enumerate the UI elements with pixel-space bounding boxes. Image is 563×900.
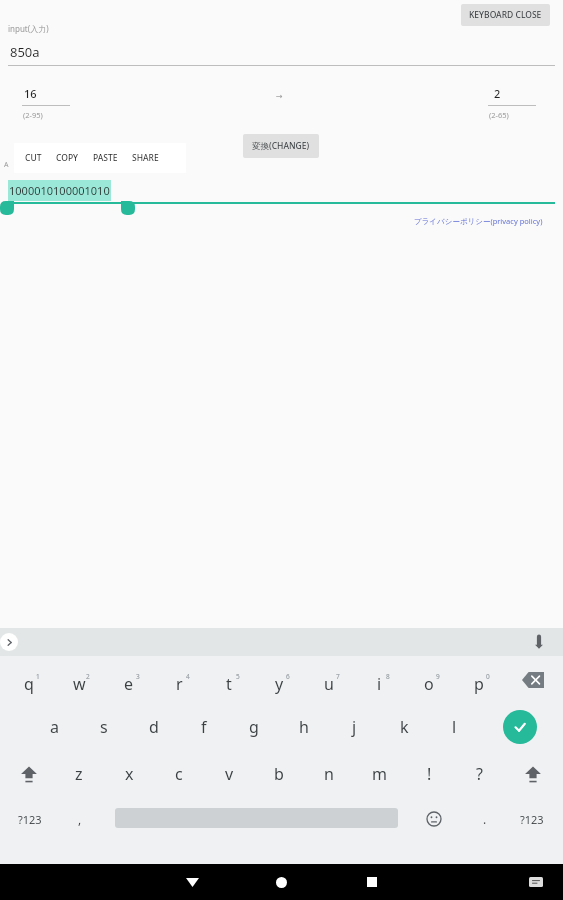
staticText: w <box>73 673 86 695</box>
button[interactable]: w <box>54 656 104 703</box>
button[interactable]: a <box>29 703 79 750</box>
staticText: 8 <box>386 672 390 681</box>
button[interactable]: ?123 <box>506 797 558 841</box>
staticText: A <box>4 160 9 170</box>
staticText: , <box>78 811 82 827</box>
staticText: CUT <box>25 152 42 164</box>
staticText: ? <box>476 763 483 785</box>
button[interactable]: ! <box>404 750 454 797</box>
staticText: q <box>24 673 34 695</box>
staticText: 1 <box>36 672 40 681</box>
staticText: b <box>274 763 284 785</box>
button[interactable]: u <box>304 656 354 703</box>
button[interactable]: f <box>179 703 229 750</box>
button[interactable]: o <box>404 656 454 703</box>
staticText: (2-95) <box>23 110 43 120</box>
staticText: PASTE <box>93 152 118 164</box>
button[interactable]: c <box>154 750 204 797</box>
button[interactable]: n <box>304 750 354 797</box>
staticText: ?123 <box>520 812 544 827</box>
button[interactable]: j <box>329 703 379 750</box>
button[interactable]: g <box>229 703 279 750</box>
button[interactable]: ? <box>454 750 504 797</box>
staticText: o <box>424 673 434 695</box>
button[interactable]: t <box>204 656 254 703</box>
staticText: 2 <box>86 672 90 681</box>
button[interactable]: Shift <box>508 750 558 797</box>
button[interactable]: d <box>129 703 179 750</box>
button[interactable]: Emoji <box>412 797 456 841</box>
button[interactable]: e <box>104 656 154 703</box>
staticText: r <box>176 673 183 695</box>
staticText: KEYBOARD CLOSE <box>469 9 542 21</box>
staticText: k <box>400 716 409 738</box>
button[interactable]: . <box>463 797 507 841</box>
button[interactable]: h <box>279 703 329 750</box>
button[interactable]: Backspace <box>508 656 558 703</box>
staticText: 7 <box>336 672 340 681</box>
staticText: 9 <box>436 672 440 681</box>
button[interactable]: p <box>454 656 504 703</box>
staticText: . <box>483 811 487 827</box>
staticText: COPY <box>56 152 79 164</box>
button[interactable]: x <box>104 750 154 797</box>
button[interactable]: q <box>4 656 54 703</box>
staticText: t <box>226 673 232 695</box>
staticText: input(入力) <box>8 23 49 34</box>
button[interactable]: Enter <box>495 703 545 750</box>
staticText: f <box>201 716 207 738</box>
button[interactable]: Change keyboard <box>523 869 549 895</box>
staticText: d <box>149 716 159 738</box>
staticText: l <box>452 716 457 738</box>
button[interactable]: Recent apps <box>352 864 392 900</box>
button[interactable]: r <box>154 656 204 703</box>
button[interactable]: ?123 <box>4 797 56 841</box>
button[interactable]: Back <box>172 864 212 900</box>
staticText: 850a <box>10 43 40 61</box>
staticText: 4 <box>186 672 190 681</box>
button[interactable]: m <box>354 750 404 797</box>
button[interactable]: 変換(CHANGE) <box>243 134 319 158</box>
button[interactable]: SHARE <box>125 146 166 170</box>
button[interactable]: , <box>58 797 102 841</box>
button[interactable]: Expand toolbar <box>0 633 18 651</box>
staticText: m <box>372 763 387 785</box>
staticText: プライバシーポリシー(privacy policy) <box>414 216 543 226</box>
button[interactable]: Voice input <box>529 632 549 652</box>
button[interactable]: s <box>79 703 129 750</box>
staticText: u <box>324 673 334 695</box>
staticText: z <box>75 763 83 785</box>
button[interactable]: i <box>354 656 404 703</box>
staticText: n <box>324 763 334 785</box>
staticText: i <box>377 673 382 695</box>
staticText: j <box>352 716 357 738</box>
staticText: g <box>249 716 259 738</box>
staticText: c <box>175 763 183 785</box>
button[interactable]: l <box>429 703 479 750</box>
button[interactable]: プライバシーポリシー(privacy policy) <box>414 216 543 226</box>
button[interactable]: y <box>254 656 304 703</box>
button[interactable]: CUT <box>18 146 49 170</box>
staticText: 2 <box>494 86 501 101</box>
staticText: (2-65) <box>489 110 509 120</box>
button[interactable]: KEYBOARD CLOSE <box>461 4 550 26</box>
button[interactable]: COPY <box>49 146 86 170</box>
staticText: v <box>225 763 234 785</box>
button[interactable]: b <box>254 750 304 797</box>
staticText: e <box>124 673 134 695</box>
staticText: a <box>50 716 59 738</box>
staticText: ! <box>427 763 432 785</box>
staticText: 1000010100001010 <box>9 183 110 198</box>
staticText: 変換(CHANGE) <box>252 140 310 152</box>
button[interactable]: k <box>379 703 429 750</box>
button[interactable]: Shift <box>4 750 54 797</box>
staticText: y <box>275 673 284 695</box>
staticText: 6 <box>286 672 290 681</box>
staticText: p <box>474 673 484 695</box>
button[interactable]: v <box>204 750 254 797</box>
button[interactable]: z <box>54 750 104 797</box>
button[interactable]: PASTE <box>86 146 125 170</box>
staticText: 16 <box>24 86 37 101</box>
button[interactable]: Home <box>261 864 301 900</box>
